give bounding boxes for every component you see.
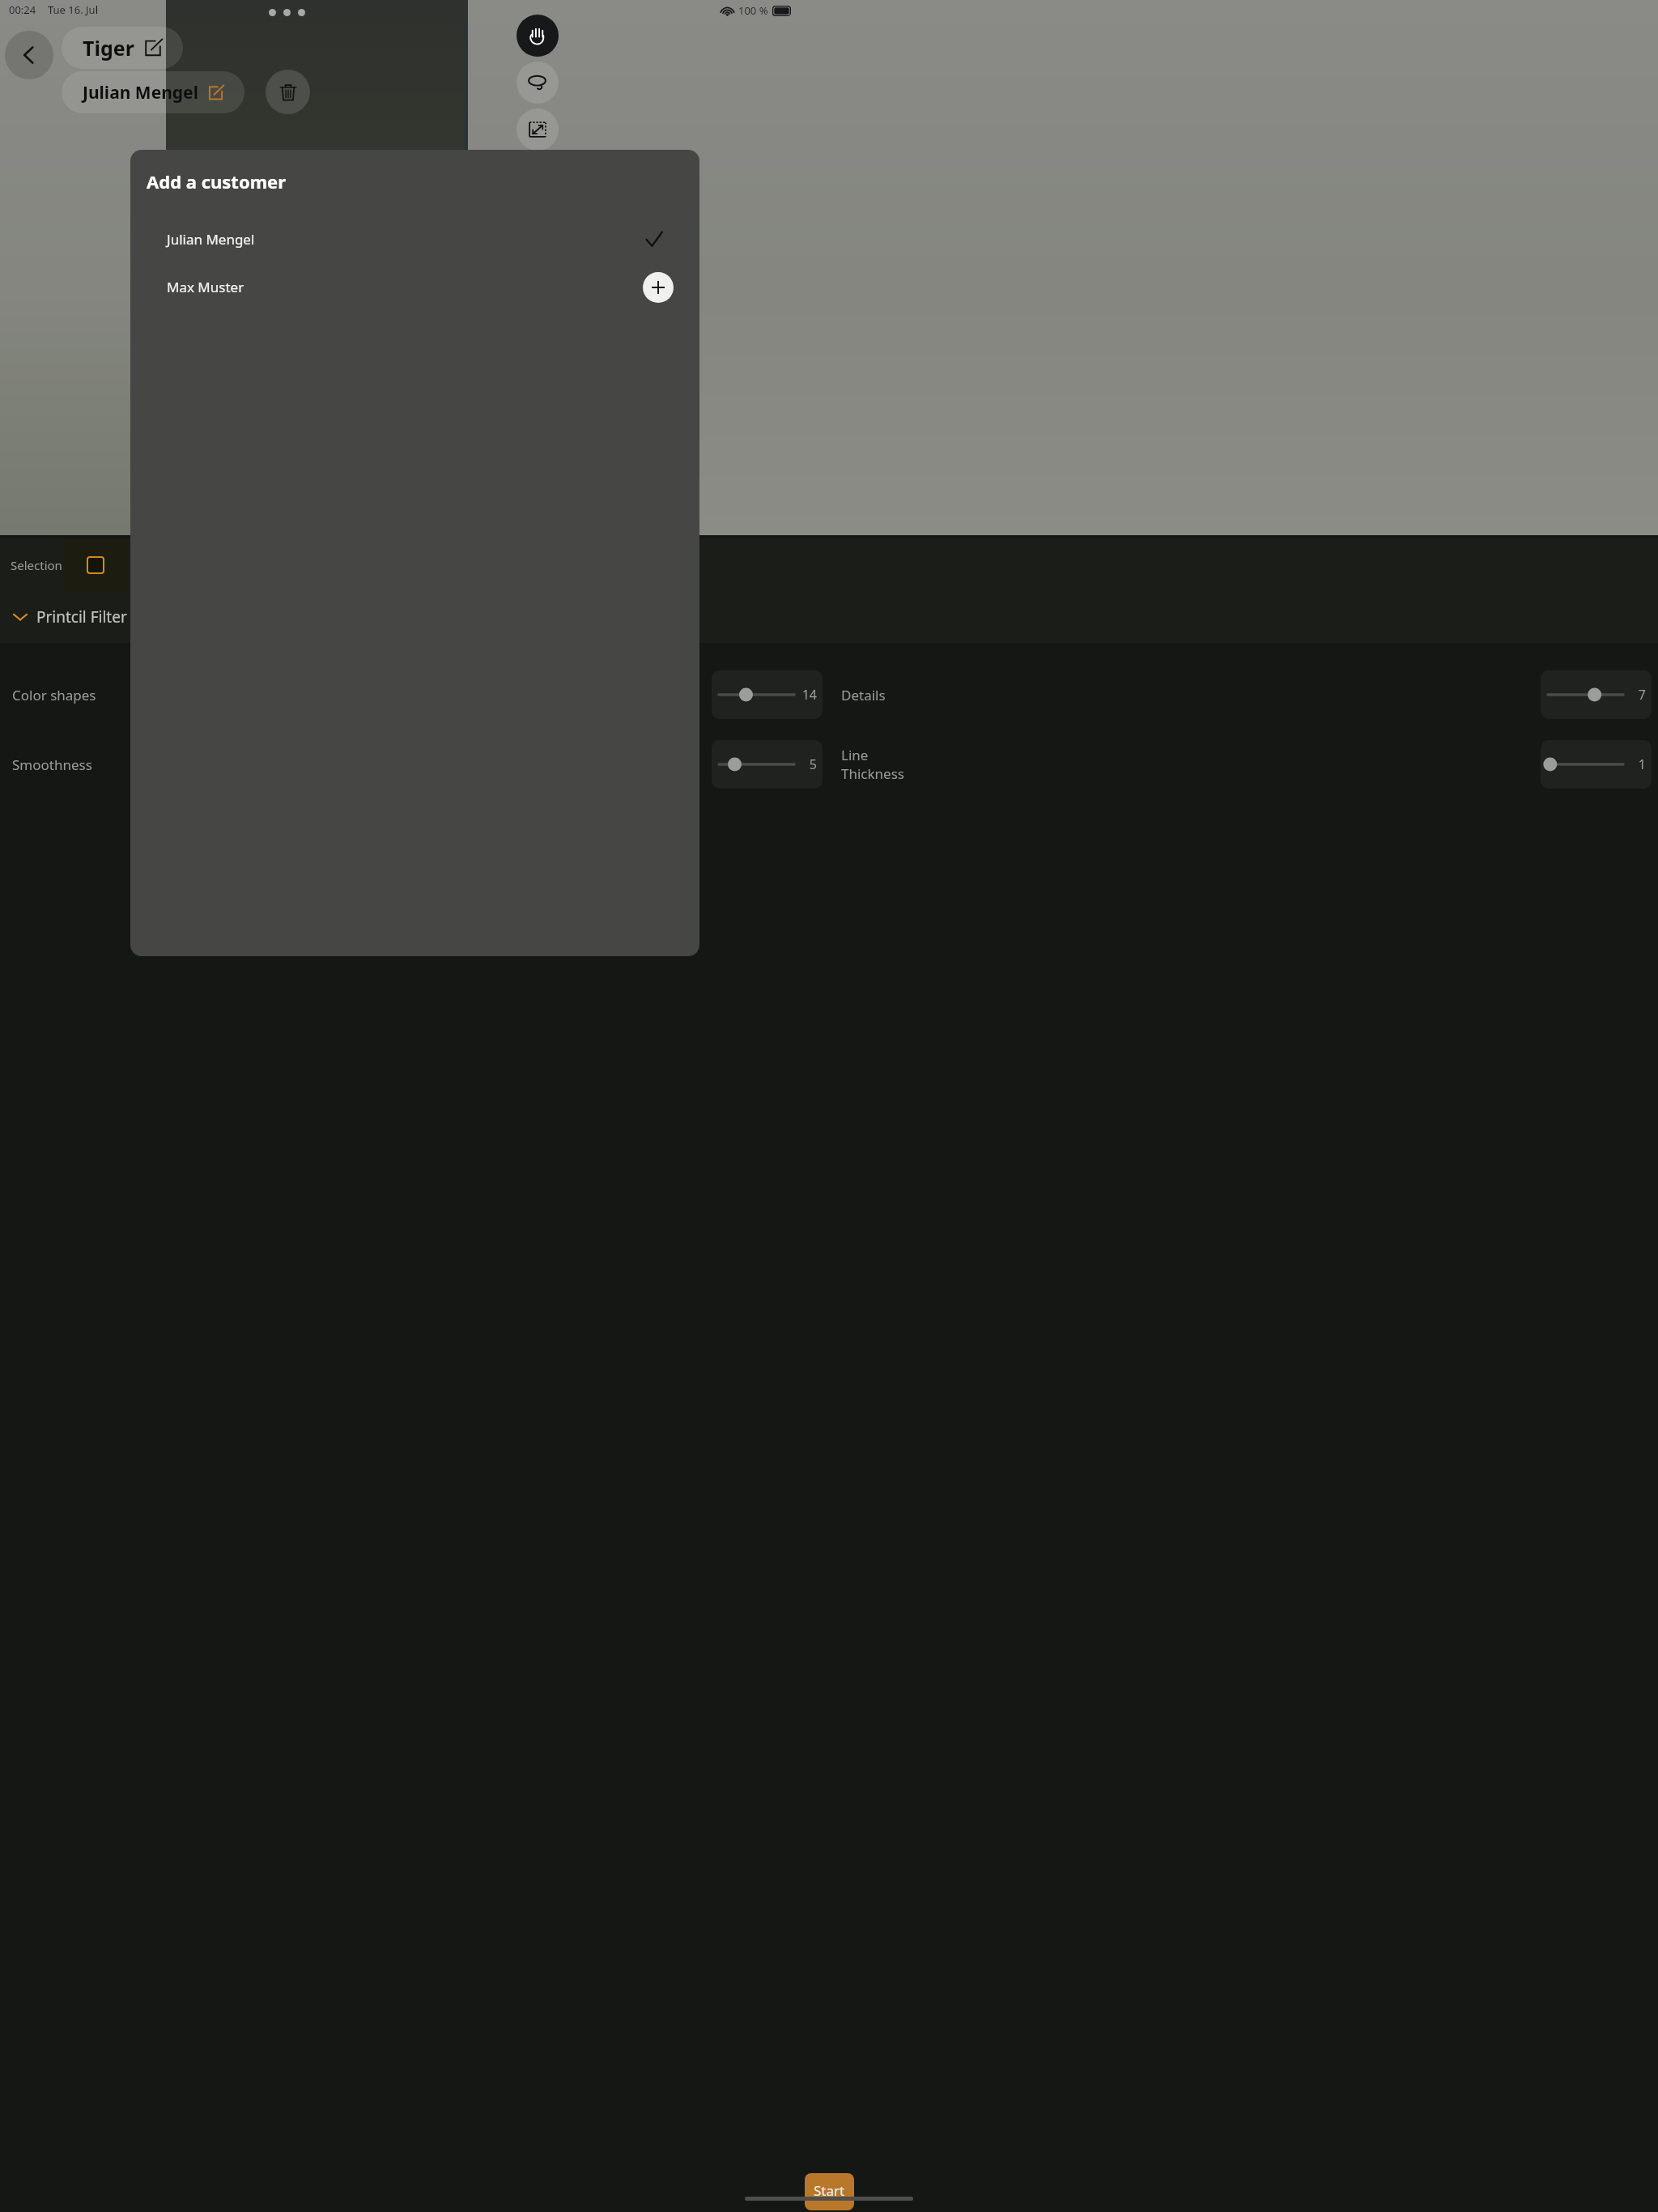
- staticText: Tue 16. Jul: [48, 2, 98, 17]
- staticText: 7: [1628, 686, 1646, 704]
- button[interactable]: 1: [1541, 740, 1652, 789]
- button[interactable]: Start: [805, 2173, 854, 2210]
- button[interactable]: Tiger: [62, 27, 183, 69]
- staticText: Printcil Filter: [36, 606, 127, 627]
- button[interactable]: [63, 538, 128, 591]
- staticText: Smoothness: [12, 755, 92, 774]
- staticText: 1: [1628, 755, 1646, 773]
- button[interactable]: Add customer: [643, 272, 674, 303]
- staticText: 100 %: [738, 3, 768, 18]
- button[interactable]: Printcil Filter: [0, 591, 1658, 643]
- staticText: 5: [799, 755, 817, 773]
- staticText: Selection: [11, 557, 62, 573]
- other: Selected: [644, 229, 665, 250]
- staticText: Add a customer: [147, 169, 287, 194]
- button[interactable]: Max Muster: [130, 263, 699, 311]
- staticText: Julian Mengel: [83, 81, 198, 104]
- staticText: Tiger: [83, 34, 134, 62]
- button[interactable]: Back: [5, 31, 53, 79]
- staticText: Color shapes: [12, 686, 96, 704]
- button[interactable]: 5: [712, 740, 823, 789]
- staticText: Start: [814, 2181, 845, 2200]
- staticText: Max Muster: [167, 278, 244, 296]
- button[interactable]: Lasso: [517, 62, 559, 104]
- staticText: Line Thickness: [841, 746, 904, 783]
- staticText: 00:24: [9, 2, 36, 17]
- button[interactable]: Julian Mengel: [62, 71, 244, 113]
- staticText: 14: [799, 686, 817, 704]
- staticText: Details: [841, 686, 886, 704]
- button[interactable]: Delete: [266, 70, 310, 114]
- staticText: Julian Mengel: [167, 230, 255, 249]
- button[interactable]: Pan: [517, 15, 559, 57]
- button[interactable]: Julian Mengel: [130, 215, 699, 263]
- button[interactable]: 7: [1541, 670, 1652, 719]
- button[interactable]: Transform: [517, 108, 559, 151]
- button[interactable]: 14: [712, 670, 823, 719]
